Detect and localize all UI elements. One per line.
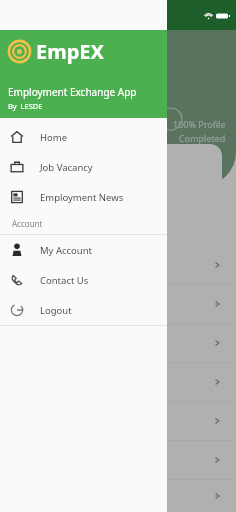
staticText: Employment News bbox=[40, 191, 124, 204]
staticText: Government Jobs bbox=[24, 154, 98, 166]
staticText: Employment Exchange App bbox=[8, 85, 137, 99]
button[interactable]: Employment News bbox=[0, 182, 167, 212]
button[interactable]: My Account bbox=[0, 235, 167, 265]
staticText: My Account bbox=[40, 244, 93, 257]
button[interactable]: Contact Us bbox=[0, 265, 167, 295]
button[interactable]: Logout bbox=[0, 295, 167, 325]
button[interactable]: Employment Exchange bbox=[0, 246, 236, 284]
staticText: Contact Us bbox=[40, 274, 89, 287]
staticText: By LESDE bbox=[8, 101, 43, 111]
button[interactable]: Skill Development… bbox=[0, 285, 236, 323]
button[interactable]: Home bbox=[0, 122, 167, 152]
button[interactable]: Service bbox=[0, 402, 236, 440]
button[interactable]: Service bbox=[0, 324, 236, 362]
button[interactable]: Service bbox=[0, 363, 236, 401]
staticText: EmpEX bbox=[36, 38, 104, 65]
button[interactable]: Job Vacancy bbox=[0, 152, 167, 182]
staticText: Skill Development… bbox=[14, 298, 93, 310]
button[interactable]: Service bbox=[0, 441, 236, 479]
button[interactable]: Service bbox=[0, 480, 236, 512]
staticText: Account bbox=[12, 218, 43, 229]
staticText: Home bbox=[40, 131, 68, 144]
staticText: Logout bbox=[40, 304, 72, 317]
staticText: 100% Profile bbox=[173, 118, 226, 130]
staticText: Completed bbox=[179, 132, 226, 144]
staticText: Job Vacancy bbox=[40, 161, 93, 174]
